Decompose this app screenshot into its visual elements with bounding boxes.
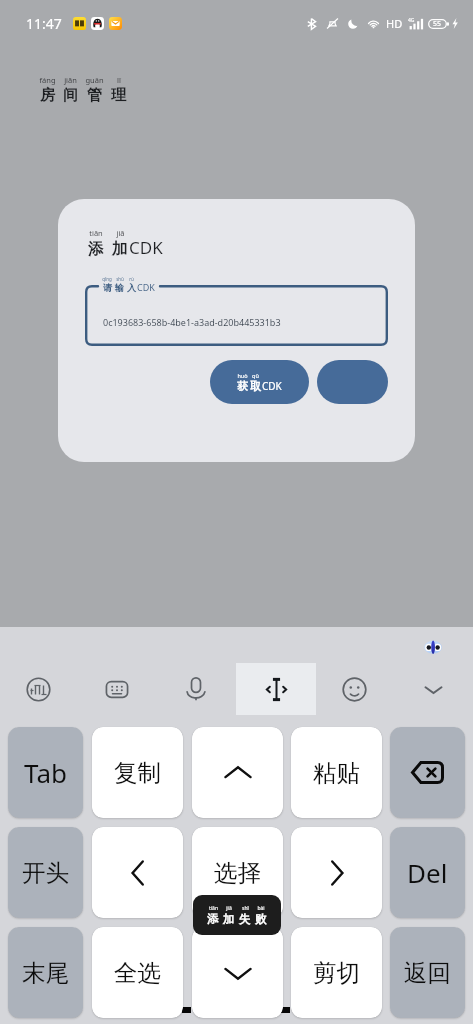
button[interactable]: 复制 (92, 727, 183, 818)
staticText: 间 (63, 86, 78, 105)
staticText: CDK (137, 281, 155, 293)
button[interactable]: 粘贴 (291, 727, 382, 818)
button[interactable]: Voice input (182, 675, 210, 703)
staticText: 开头 (22, 858, 69, 888)
button[interactable]: Tab (8, 727, 83, 818)
button[interactable]: Input method (26, 677, 51, 702)
staticText: 理 (111, 86, 126, 105)
staticText: 返回 (404, 958, 451, 988)
staticText: 0c193683-658b-4be1-a3ad-d20b445331b3 (103, 316, 281, 328)
staticText: 全选 (114, 958, 161, 988)
button[interactable]: 全选 (92, 927, 183, 1018)
staticText: 55 (433, 19, 442, 29)
staticText: CDK (129, 236, 163, 259)
staticText: 获 (237, 379, 248, 393)
staticText: jiā (116, 228, 125, 238)
staticText: 粘贴 (313, 758, 360, 788)
staticText: 入 (127, 282, 136, 293)
staticText: qǐng (102, 276, 112, 282)
button[interactable]: Emoji (342, 677, 367, 702)
button[interactable]: BKSP (390, 727, 465, 818)
staticText: 复制 (114, 758, 161, 788)
button[interactable]: RIGHT (291, 827, 382, 918)
staticText: huò (237, 372, 248, 379)
staticText: 请 (103, 282, 112, 293)
staticText: guǎn (85, 75, 104, 85)
button[interactable]: 末尾 (8, 927, 83, 1018)
button[interactable]: 剪切 (291, 927, 382, 1018)
staticText: shī (242, 905, 249, 912)
button[interactable]: 选择 (192, 827, 283, 918)
staticText: jiān (64, 75, 77, 85)
staticText: 选择 (214, 858, 261, 888)
staticText: 添 (88, 239, 104, 259)
button[interactable]: DOWN (192, 927, 283, 1018)
button[interactable]: Del (390, 827, 465, 918)
staticText: 剪切 (313, 958, 360, 988)
staticText: 添 (207, 912, 219, 926)
button[interactable]: Hide keyboard (421, 677, 446, 702)
button[interactable]: UP (192, 727, 283, 818)
button[interactable]: LEFT (92, 827, 183, 918)
staticText: bài (257, 905, 265, 912)
staticText: 失 (239, 912, 251, 926)
staticText: 4G (408, 17, 415, 24)
button[interactable]: 返回 (390, 927, 465, 1018)
staticText: 房 (40, 86, 55, 105)
button[interactable]: Keyboard layout (105, 678, 129, 701)
staticText: jiā (226, 905, 232, 912)
staticText: 加 (112, 239, 128, 259)
staticText: HD (386, 16, 403, 31)
button[interactable]: huò (210, 360, 309, 404)
staticText: 败 (255, 912, 267, 926)
staticText: qǔ (252, 372, 259, 379)
staticText: tiān (89, 228, 103, 238)
button[interactable]: Confirm (317, 360, 388, 404)
staticText: 管 (87, 86, 102, 105)
staticText: CDK (262, 379, 282, 393)
staticText: 11:47 (26, 14, 62, 33)
staticText: rù (129, 276, 134, 282)
staticText: 末尾 (22, 958, 69, 988)
button[interactable]: 开头 (8, 827, 83, 918)
staticText: fáng (39, 75, 56, 85)
staticText: Del (407, 855, 448, 890)
staticText: 加 (223, 912, 235, 926)
staticText: shū (116, 276, 124, 282)
staticText: Tab (24, 755, 67, 790)
staticText: 取 (250, 379, 261, 393)
button[interactable]: Move cursor (236, 663, 316, 715)
staticText: lǐ (117, 75, 121, 85)
staticText: 输 (115, 282, 124, 293)
staticText: tiān (209, 905, 218, 912)
